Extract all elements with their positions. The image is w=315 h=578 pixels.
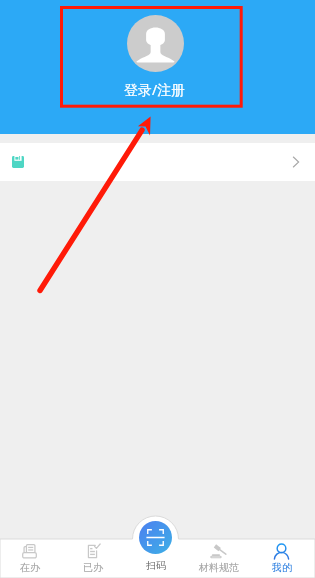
staticText: 在办 xyxy=(20,561,40,574)
button[interactable]: 扫码 Scan xyxy=(139,521,172,572)
button[interactable]: 登录/注册 xyxy=(124,15,186,99)
button[interactable]: 已办 xyxy=(61,539,124,578)
button[interactable]: 我的 xyxy=(250,539,313,578)
button[interactable]: 在办 xyxy=(0,539,61,578)
button[interactable]: 材料规范 xyxy=(187,539,250,578)
button[interactable] xyxy=(0,143,315,181)
staticText: 材料规范 xyxy=(199,561,239,574)
staticText: 我的 xyxy=(272,561,292,574)
staticText: 登录/注册 xyxy=(124,80,186,99)
staticText: 扫码 xyxy=(146,559,166,572)
staticText: 已办 xyxy=(83,561,103,574)
